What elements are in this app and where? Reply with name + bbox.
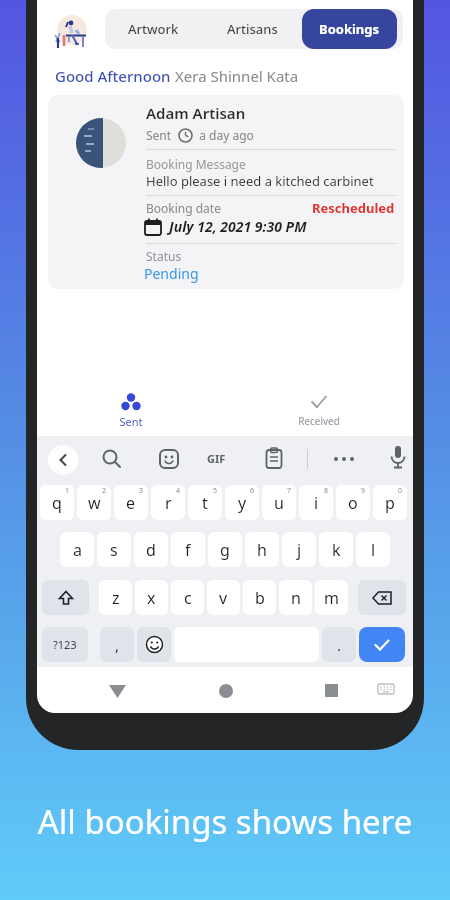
staticText: 6 xyxy=(250,486,255,496)
button[interactable]: s xyxy=(97,532,131,567)
button[interactable] xyxy=(101,448,123,470)
staticText: Artisans xyxy=(227,20,278,38)
button[interactable]: w xyxy=(77,485,111,520)
staticText: u xyxy=(274,492,284,514)
button[interactable]: p xyxy=(373,485,407,520)
staticText: p xyxy=(385,492,395,514)
staticText: July 12, 2021 9:30 PM xyxy=(169,217,307,236)
button[interactable]: GIF xyxy=(207,451,226,466)
staticText: Sent xyxy=(37,414,225,429)
button[interactable]: . xyxy=(322,627,356,662)
button[interactable] xyxy=(109,685,126,698)
staticText: Adam Artisan xyxy=(146,103,246,123)
staticText: Pending xyxy=(144,264,199,283)
staticText: 1 xyxy=(65,486,70,496)
button[interactable]: f xyxy=(171,532,205,567)
staticText: f xyxy=(185,539,191,561)
button[interactable]: v xyxy=(207,580,240,615)
button[interactable] xyxy=(390,445,406,471)
staticText: a xyxy=(73,539,82,561)
button[interactable]: c xyxy=(171,580,204,615)
button[interactable]: , xyxy=(100,627,134,662)
staticText: m xyxy=(324,587,339,609)
staticText: z xyxy=(112,587,120,609)
button[interactable] xyxy=(359,627,405,662)
staticText: r xyxy=(165,492,172,514)
staticText: Received xyxy=(225,414,413,428)
staticText: y xyxy=(238,492,247,514)
staticText: All bookings shows here xyxy=(0,799,450,844)
button[interactable]: q xyxy=(40,485,74,520)
staticText: Booking Message xyxy=(146,156,246,172)
staticText: 4 xyxy=(176,486,181,496)
button[interactable]: u xyxy=(262,485,296,520)
button[interactable]: g xyxy=(208,532,242,567)
staticText: l xyxy=(371,539,376,561)
staticText: Artwork xyxy=(128,20,179,38)
staticText: Bookings xyxy=(319,20,380,38)
staticText: j xyxy=(297,539,302,561)
button[interactable]: h xyxy=(245,532,279,567)
staticText: g xyxy=(220,539,230,561)
staticText: d xyxy=(146,539,156,561)
button[interactable]: t xyxy=(188,485,222,520)
button[interactable]: a xyxy=(60,532,94,567)
staticText: ?123 xyxy=(53,637,77,652)
button[interactable]: b xyxy=(243,580,276,615)
staticText: o xyxy=(348,492,358,514)
button[interactable] xyxy=(333,456,355,462)
staticText: 8 xyxy=(324,486,329,496)
staticText: Sent xyxy=(146,127,178,143)
button[interactable] xyxy=(137,627,171,662)
staticText: x xyxy=(147,587,156,609)
staticText: e xyxy=(126,492,136,514)
button[interactable] xyxy=(219,684,233,698)
staticText: h xyxy=(257,539,267,561)
button[interactable]: z xyxy=(99,580,132,615)
staticText: 5 xyxy=(213,486,218,496)
staticText: 7 xyxy=(287,486,292,496)
button[interactable]: e xyxy=(114,485,148,520)
button[interactable] xyxy=(42,580,89,615)
button[interactable]: i xyxy=(299,485,333,520)
button[interactable]: ?123 xyxy=(42,627,88,662)
staticText: s xyxy=(110,539,118,561)
button[interactable] xyxy=(358,580,406,615)
button[interactable]: Adam Artisan xyxy=(48,95,404,289)
staticText: w xyxy=(88,492,101,514)
button[interactable]: Sent xyxy=(37,388,225,432)
button[interactable]: m xyxy=(315,580,348,615)
button[interactable]: Bookings xyxy=(302,9,397,49)
button[interactable]: l xyxy=(356,532,390,567)
button[interactable]: Artisans xyxy=(202,9,302,49)
staticText: q xyxy=(52,492,62,514)
button[interactable]: j xyxy=(282,532,316,567)
button[interactable]: d xyxy=(134,532,168,567)
staticText: 2 xyxy=(102,486,107,496)
staticText: Hello please i need a kitched carbinet xyxy=(146,172,374,190)
button[interactable]: Artwork xyxy=(105,9,202,49)
button[interactable]: r xyxy=(151,485,185,520)
button[interactable] xyxy=(264,447,284,471)
button[interactable] xyxy=(48,445,78,475)
button[interactable]: x xyxy=(135,580,168,615)
button[interactable]: k xyxy=(319,532,353,567)
staticText: b xyxy=(255,587,265,609)
staticText: Status xyxy=(146,248,182,264)
button[interactable]: n xyxy=(279,580,312,615)
staticText: . xyxy=(337,635,342,655)
staticText: Booking date xyxy=(146,200,221,216)
staticText: Xera Shinnel Kata xyxy=(175,66,299,86)
button[interactable]: y xyxy=(225,485,259,520)
button[interactable] xyxy=(158,448,180,470)
staticText: , xyxy=(115,635,120,655)
button[interactable] xyxy=(378,684,394,696)
button[interactable]: o xyxy=(336,485,370,520)
staticText: 3 xyxy=(139,486,144,496)
staticText: t xyxy=(202,492,208,514)
button[interactable]: Received xyxy=(225,388,413,432)
staticText: c xyxy=(184,587,192,609)
staticText: a day ago xyxy=(193,127,254,143)
